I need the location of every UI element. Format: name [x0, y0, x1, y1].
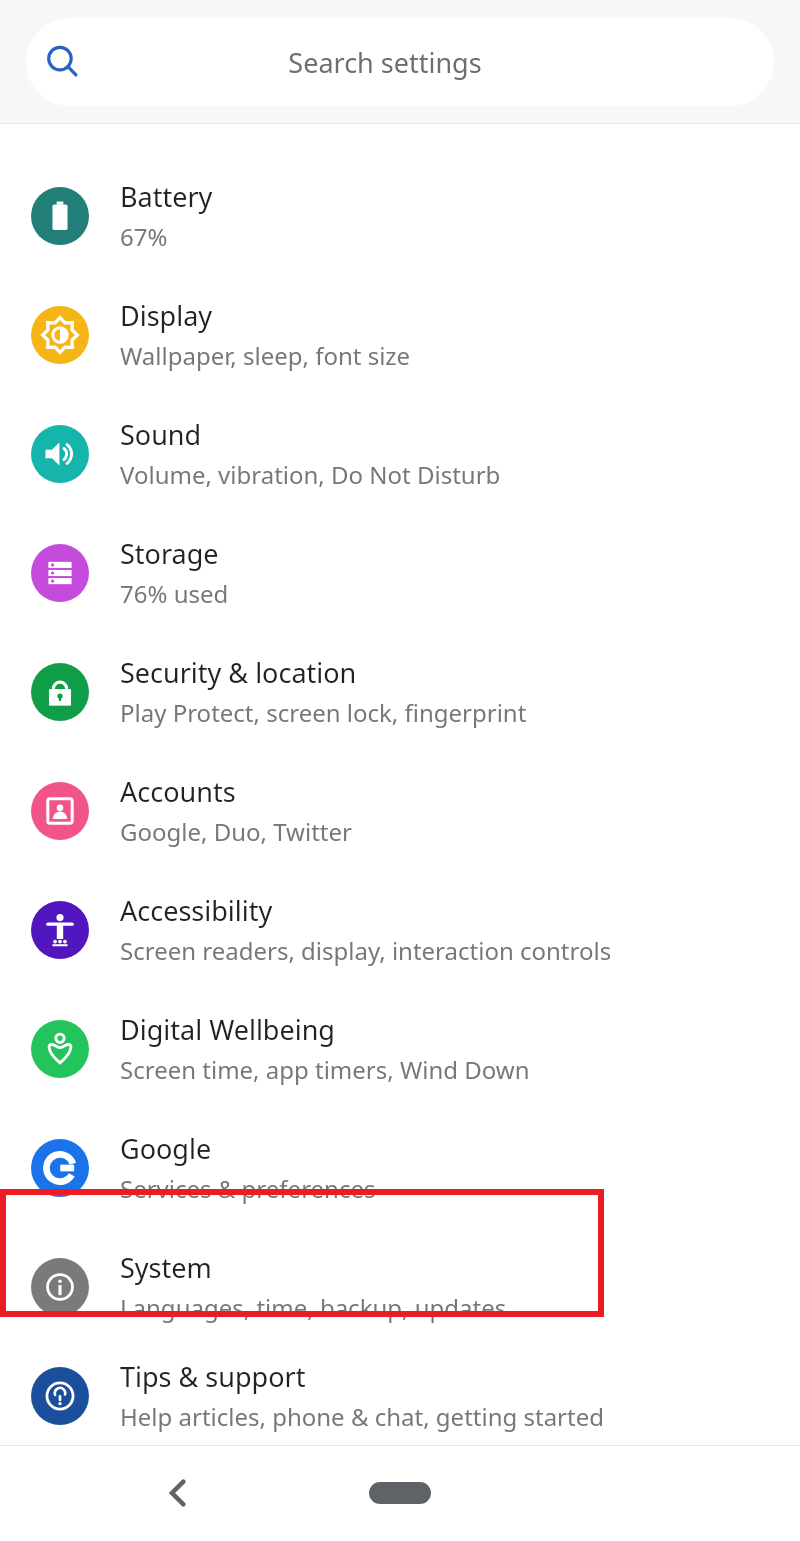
- staticText: Help articles, phone & chat, getting sta…: [120, 1400, 604, 1433]
- button[interactable]: Battery: [0, 156, 800, 275]
- staticText: Google: [120, 1130, 212, 1167]
- button[interactable]: Sound: [0, 394, 800, 513]
- staticText: Display: [120, 297, 213, 334]
- staticText: 76% used: [120, 577, 229, 610]
- staticText: Languages, time, backup, updates: [120, 1291, 507, 1324]
- button[interactable]: Home: [352, 1463, 448, 1523]
- staticText: Screen readers, display, interaction con…: [120, 934, 612, 967]
- staticText: Digital Wellbeing: [120, 1011, 335, 1048]
- staticText: Accessibility: [120, 892, 273, 929]
- button[interactable]: Accessibility: [0, 870, 800, 989]
- button[interactable]: System: [0, 1227, 800, 1346]
- staticText: Screen time, app timers, Wind Down: [120, 1053, 530, 1086]
- button[interactable]: Tips & support: [0, 1346, 800, 1445]
- staticText: Play Protect, screen lock, fingerprint: [120, 696, 527, 729]
- staticText: System: [120, 1249, 212, 1286]
- staticText: Volume, vibration, Do Not Disturb: [120, 458, 501, 491]
- staticText: Google, Duo, Twitter: [120, 815, 352, 848]
- button[interactable]: Display: [0, 275, 800, 394]
- button[interactable]: Accounts: [0, 751, 800, 870]
- staticText: Tips & support: [120, 1358, 306, 1395]
- button[interactable]: Storage: [0, 513, 800, 632]
- staticText: Battery: [120, 178, 213, 215]
- staticText: Security & location: [120, 654, 357, 691]
- staticText: Accounts: [120, 773, 236, 810]
- button[interactable]: Security & location: [0, 632, 800, 751]
- staticText: Search settings: [70, 44, 700, 81]
- staticText: Wallpaper, sleep, font size: [120, 339, 411, 372]
- staticText: Sound: [120, 416, 202, 453]
- button[interactable]: Search settings: [26, 18, 774, 106]
- button[interactable]: Back: [142, 1457, 214, 1529]
- staticText: 67%: [120, 220, 168, 253]
- button[interactable]: Digital Wellbeing: [0, 989, 800, 1108]
- button[interactable]: Google: [0, 1108, 800, 1227]
- staticText: Services & preferences: [120, 1172, 376, 1205]
- staticText: Storage: [120, 535, 219, 572]
